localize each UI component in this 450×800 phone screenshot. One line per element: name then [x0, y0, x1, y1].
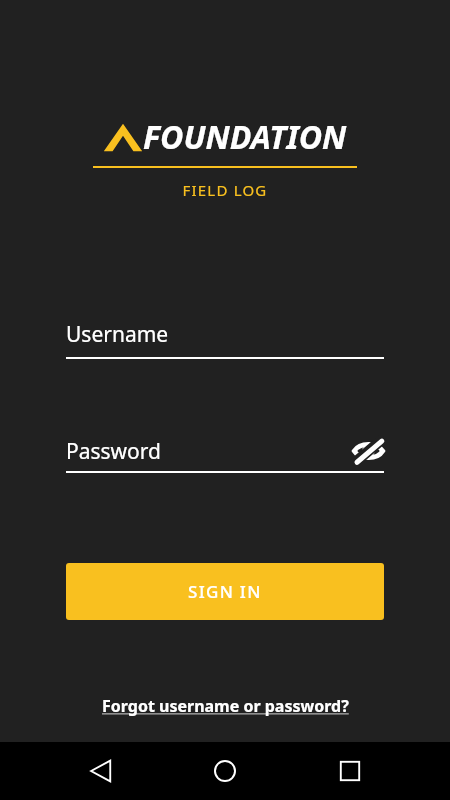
staticText: FOUNDATION — [143, 115, 347, 159]
button[interactable]: Recent apps — [326, 747, 374, 795]
button[interactable]: Password — [66, 437, 352, 466]
staticText: SIGN IN — [188, 580, 262, 603]
button[interactable]: Show password — [352, 435, 384, 467]
staticText: Forgot username or password? — [102, 695, 349, 717]
staticText: FIELD LOG — [0, 180, 450, 200]
button[interactable]: SIGN IN — [66, 563, 384, 620]
staticText: Username — [66, 320, 169, 349]
button[interactable]: Forgot username or password? — [0, 695, 450, 717]
button[interactable]: Home — [201, 747, 249, 795]
button[interactable]: Back — [77, 747, 125, 795]
button[interactable]: Username — [66, 320, 384, 359]
